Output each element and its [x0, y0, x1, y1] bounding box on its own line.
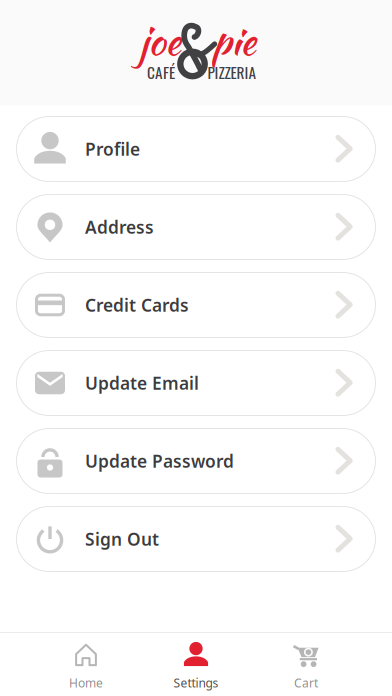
staticText: Update Email [85, 371, 199, 394]
button[interactable]: Address [16, 194, 376, 260]
staticText: Settings [173, 675, 218, 691]
staticText: joe [139, 13, 181, 69]
staticText: Update Password [85, 449, 234, 472]
staticText: CAFÉ [147, 61, 175, 83]
staticText: Home [69, 675, 103, 691]
button[interactable]: Profile [16, 116, 376, 182]
button[interactable]: Settings [141, 633, 251, 696]
button[interactable]: Update Password [16, 428, 376, 494]
staticText: PIZZERIA [207, 61, 256, 83]
staticText: Credit Cards [85, 293, 189, 316]
staticText: Address [85, 215, 154, 238]
button[interactable]: Credit Cards [16, 272, 376, 338]
button[interactable]: Sign Out [16, 506, 376, 572]
staticText: Profile [85, 137, 140, 160]
button[interactable]: Home [31, 633, 141, 696]
button[interactable]: Cart [251, 633, 361, 696]
staticText: Sign Out [85, 527, 159, 550]
staticText: Cart [294, 675, 318, 691]
button[interactable]: Update Email [16, 350, 376, 416]
staticText: pie [212, 13, 256, 69]
